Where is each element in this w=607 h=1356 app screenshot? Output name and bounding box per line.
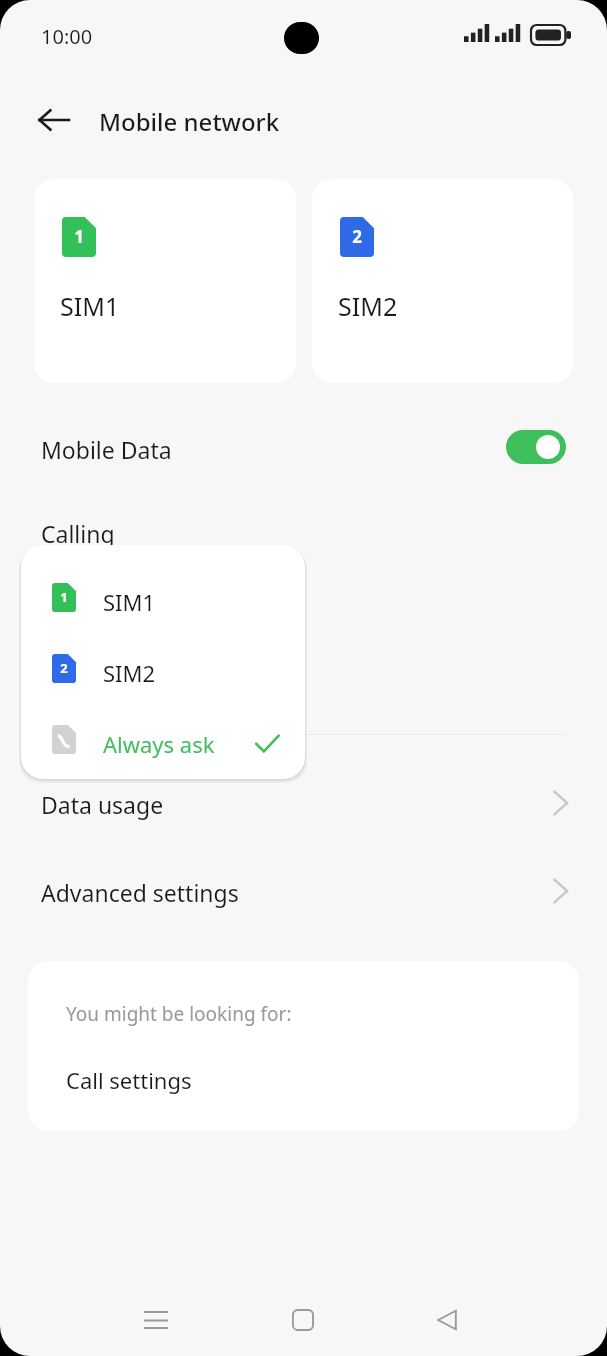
staticText: Always ask [103,729,215,759]
button[interactable]: 2 [312,179,573,383]
staticText: You might be looking for: [66,1001,292,1027]
staticText: SIM2 [338,289,398,323]
button[interactable]: 2 [21,638,305,698]
button[interactable]: Back [419,1292,475,1348]
button[interactable]: Call settings [28,1051,579,1113]
staticText: SIM2 [103,658,156,688]
staticText: Data usage [41,789,164,820]
staticText: SIM1 [103,587,156,617]
staticText: Mobile Data [41,434,172,465]
staticText: 1 [52,588,76,617]
button[interactable]: 1 [34,179,296,383]
staticText: Calling [41,518,115,549]
button[interactable]: Back [30,96,78,144]
staticText: 2 [340,225,374,265]
staticText: Mobile network [99,105,280,138]
staticText: SIM1 [60,289,120,323]
button[interactable]: Advanced settings [0,858,607,924]
button[interactable]: Always ask [21,709,305,769]
staticText: 2 [52,659,76,688]
button[interactable]: Recent apps [128,1292,184,1348]
staticText: Call settings [66,1065,192,1095]
staticText: Advanced settings [41,877,239,908]
button[interactable]: Home [275,1292,331,1348]
button[interactable]: Data usage [0,770,607,836]
staticText: 1 [62,225,96,265]
staticText: 10:00 [41,23,93,50]
button[interactable]: Mobile Data toggle [506,430,566,464]
button[interactable]: 1 [21,567,305,627]
button[interactable]: Mobile Data [0,410,607,485]
